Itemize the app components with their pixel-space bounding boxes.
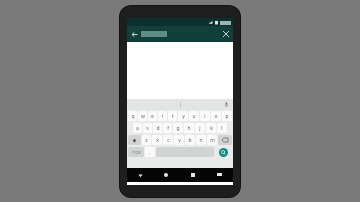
button[interactable]: Back xyxy=(127,168,153,182)
button[interactable]: a xyxy=(133,123,142,133)
button[interactable]: j xyxy=(195,123,205,133)
button[interactable]: Voice input xyxy=(224,102,229,107)
staticText: m xyxy=(210,137,215,144)
staticText: x xyxy=(156,137,159,144)
staticText: d xyxy=(156,125,160,132)
button[interactable]: w xyxy=(138,111,147,121)
staticText: t xyxy=(172,113,174,120)
button[interactable]: o xyxy=(211,111,221,121)
button[interactable]: i xyxy=(200,111,210,121)
button[interactable]: Search xyxy=(219,148,228,157)
staticText: y xyxy=(182,113,185,120)
staticText: g xyxy=(176,125,180,132)
staticText: s xyxy=(146,125,149,132)
button[interactable]: Recents xyxy=(179,168,206,182)
staticText: l xyxy=(221,125,223,132)
button[interactable]: t xyxy=(168,111,177,121)
button[interactable]: q xyxy=(128,111,137,121)
button[interactable] xyxy=(141,26,219,42)
staticText: c xyxy=(167,137,170,144)
staticText: n xyxy=(199,137,203,144)
button[interactable]: d xyxy=(153,123,162,133)
staticText: r xyxy=(161,113,164,120)
staticText: ?123 xyxy=(132,150,141,155)
button[interactable]: p xyxy=(222,111,232,121)
staticText: j xyxy=(199,125,201,132)
staticText: v xyxy=(178,137,181,144)
button[interactable]: Home xyxy=(153,168,179,182)
button[interactable]: v xyxy=(174,135,184,145)
button[interactable]: s xyxy=(143,123,152,133)
button[interactable]: n xyxy=(196,135,206,145)
button[interactable]: x xyxy=(152,135,162,145)
staticText: h xyxy=(187,125,191,132)
button[interactable]: f xyxy=(163,123,172,133)
button[interactable]: k xyxy=(206,123,216,133)
staticText: w xyxy=(141,113,145,120)
button[interactable]: ?123 xyxy=(128,147,144,157)
staticText: a xyxy=(136,125,139,132)
button[interactable]: m xyxy=(207,135,217,145)
button[interactable]: b xyxy=(185,135,195,145)
staticText: p xyxy=(225,113,229,120)
staticText: k xyxy=(210,125,213,132)
staticText: q xyxy=(131,113,135,120)
staticText: b xyxy=(188,137,192,144)
button[interactable]: u xyxy=(189,111,199,121)
button[interactable]: h xyxy=(184,123,194,133)
button[interactable]: , xyxy=(145,147,155,157)
staticText: , xyxy=(149,149,151,156)
button[interactable]: Backspace xyxy=(218,135,232,145)
staticText: i xyxy=(204,113,206,120)
button[interactable]: Clear xyxy=(219,26,233,42)
button[interactable]: c xyxy=(163,135,173,145)
staticText: u xyxy=(192,113,196,120)
button[interactable]: e xyxy=(148,111,157,121)
staticText: z xyxy=(145,137,148,144)
button[interactable]: r xyxy=(158,111,167,121)
button[interactable]: Hide keyboard xyxy=(206,168,233,182)
button[interactable]: l xyxy=(217,123,227,133)
staticText: o xyxy=(214,113,218,120)
staticText: f xyxy=(167,125,169,132)
button[interactable]: z xyxy=(142,135,151,145)
button[interactable]: g xyxy=(173,123,183,133)
staticText: e xyxy=(151,113,154,120)
button[interactable]: Shift xyxy=(128,135,141,145)
button[interactable]: y xyxy=(178,111,188,121)
button[interactable]: Back xyxy=(127,26,141,42)
